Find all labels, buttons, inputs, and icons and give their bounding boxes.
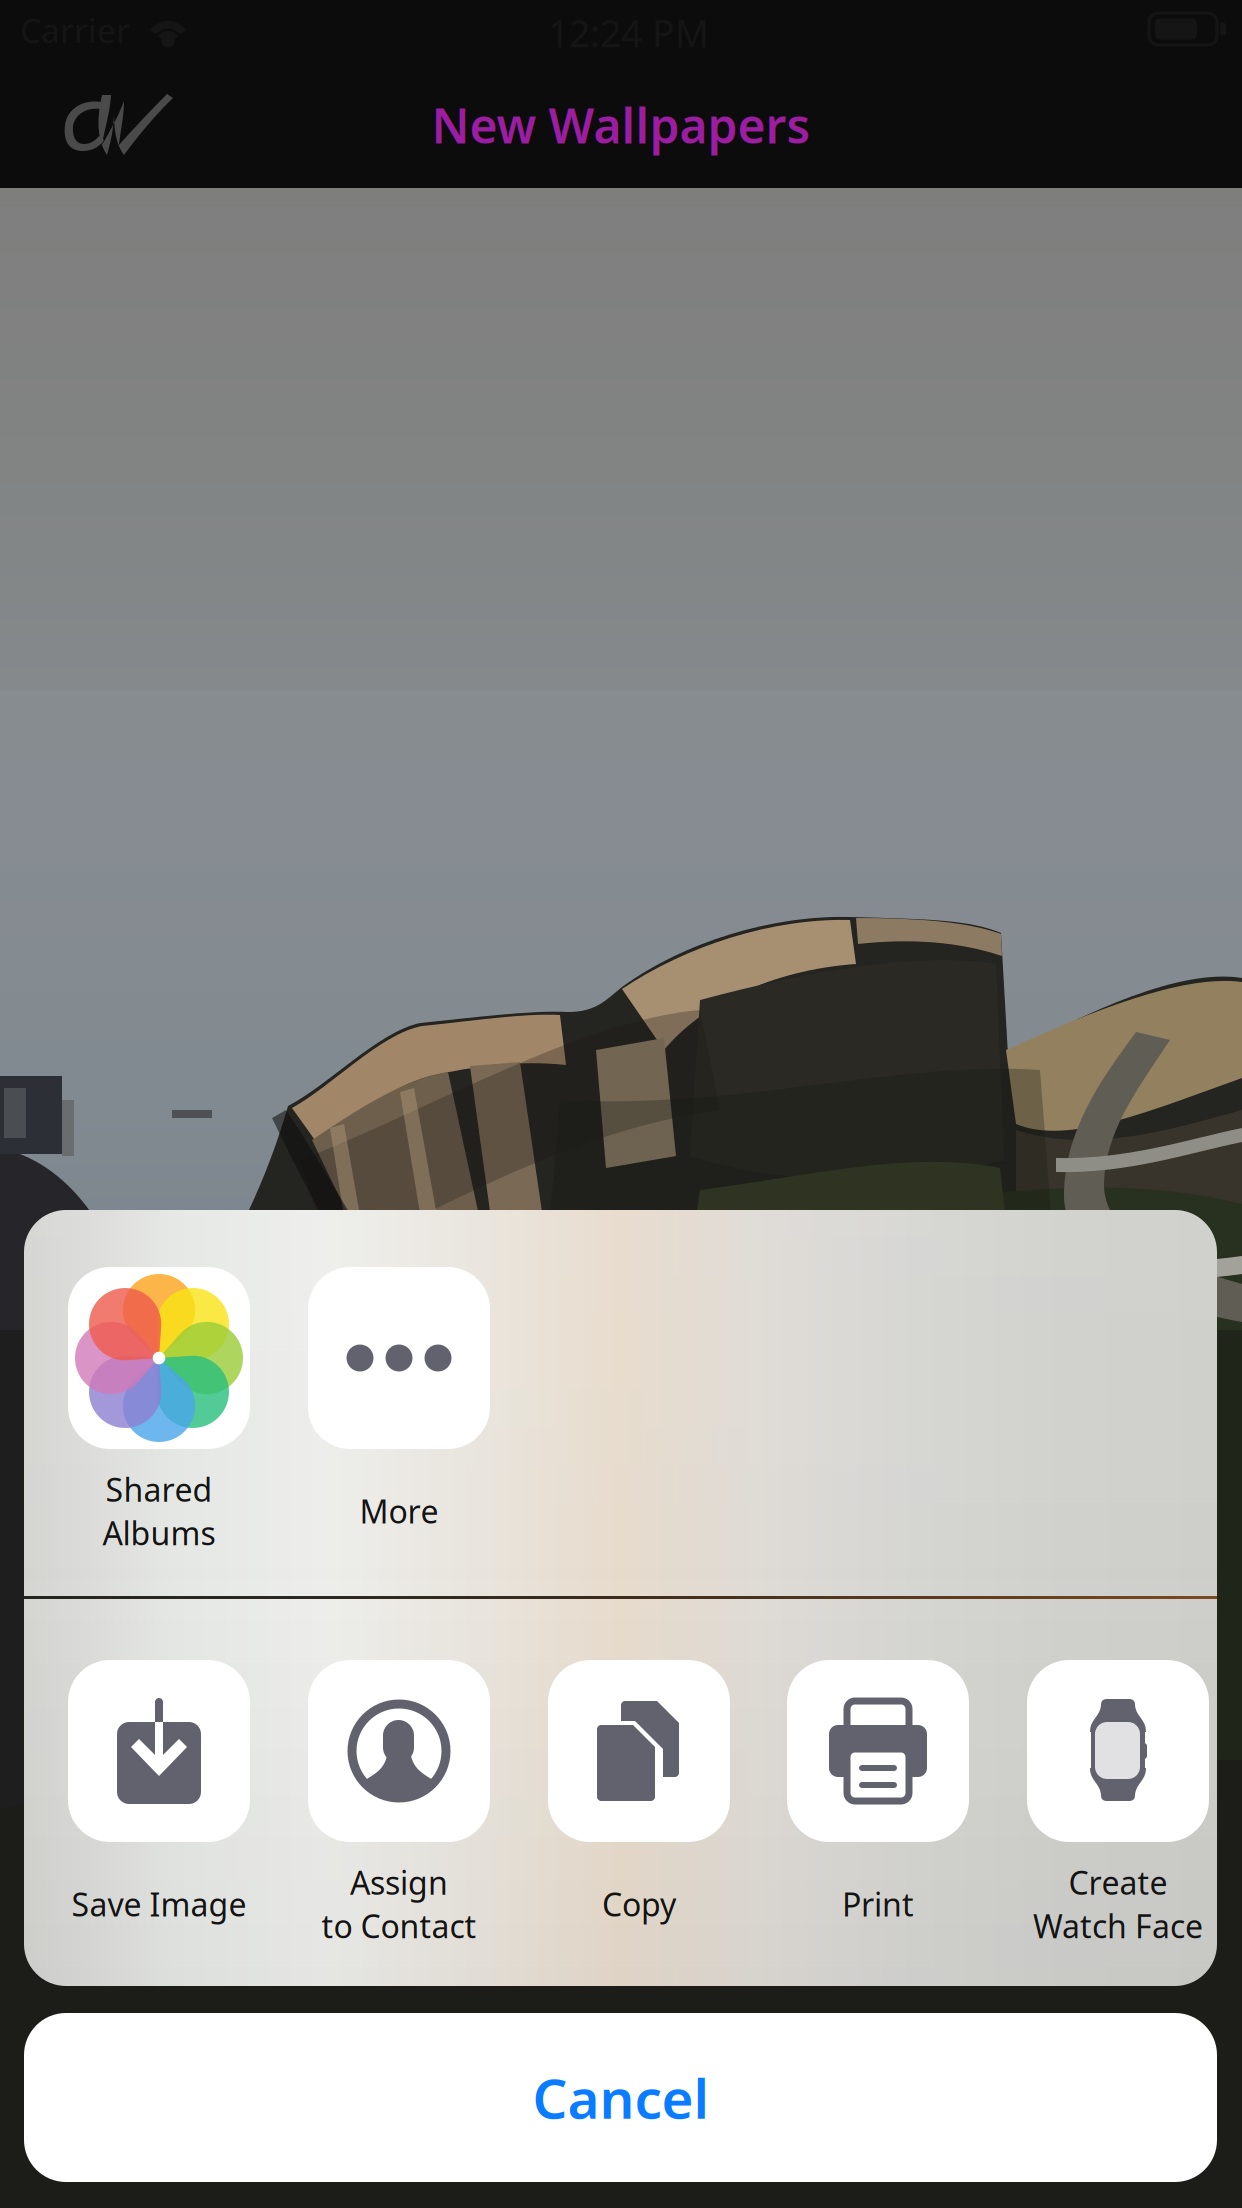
staticText: Watch Face [1033, 1904, 1203, 1947]
button[interactable]: Home [28, 62, 208, 188]
staticText: to Contact [321, 1904, 476, 1947]
button[interactable]: Assign to Contact [280, 1660, 518, 1942]
staticText: New Wallpapers [431, 93, 810, 157]
staticText: Create [1068, 1861, 1167, 1903]
staticText: Copy [602, 1883, 676, 1925]
staticText: Save Image [71, 1883, 246, 1925]
button[interactable]: Print [759, 1660, 997, 1942]
staticText: Cancel [532, 2061, 708, 2134]
button[interactable]: More [280, 1267, 518, 1549]
button[interactable]: Cancel [24, 2013, 1217, 2182]
staticText: More [359, 1490, 438, 1532]
staticText: Assign [350, 1861, 448, 1903]
staticText: Albums [102, 1511, 215, 1554]
button[interactable]: Save Image [40, 1660, 278, 1942]
staticText: Print [842, 1883, 914, 1925]
button[interactable]: Copy [520, 1660, 758, 1942]
staticText: Shared [105, 1468, 212, 1510]
button[interactable]: Create Watch Face [999, 1660, 1237, 1942]
button[interactable]: Shared Albums [40, 1267, 278, 1549]
